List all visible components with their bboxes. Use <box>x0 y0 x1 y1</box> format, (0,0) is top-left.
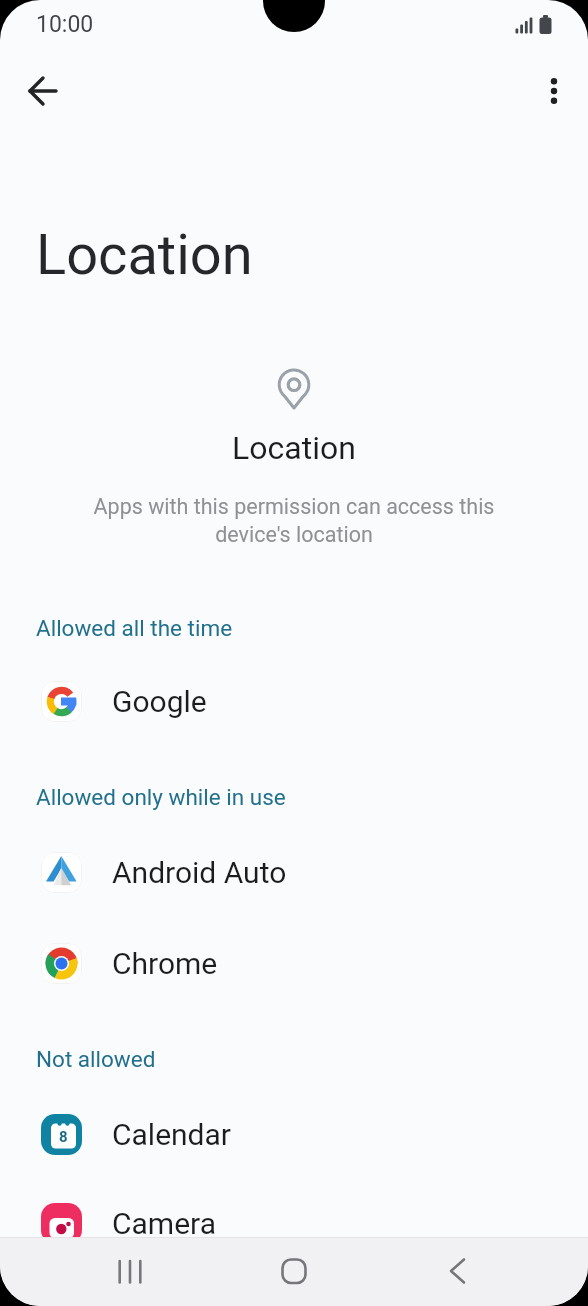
staticText: Allowed all the time <box>36 615 233 641</box>
staticText: Location <box>0 429 588 467</box>
button[interactable]: Google <box>0 670 588 732</box>
button[interactable] <box>527 64 581 118</box>
button[interactable]: 8 <box>0 1103 588 1165</box>
staticText: Apps with this permission can access thi… <box>0 494 588 547</box>
staticText: Allowed only while in use <box>36 784 286 810</box>
staticText: Android Auto <box>112 855 287 890</box>
staticText: Not allowed <box>36 1046 156 1072</box>
staticText: 8 <box>59 1128 68 1146</box>
staticText: Camera <box>112 1206 216 1241</box>
button[interactable] <box>212 1237 376 1306</box>
button[interactable] <box>376 1237 540 1306</box>
staticText: Location <box>36 222 253 288</box>
button[interactable]: Android Auto <box>0 841 588 903</box>
staticText: 10:00 <box>36 11 94 38</box>
button[interactable] <box>48 1237 212 1306</box>
staticText: Google <box>112 684 207 719</box>
button[interactable]: Camera <box>0 1192 588 1254</box>
button[interactable] <box>16 64 70 118</box>
staticText: Calendar <box>112 1117 232 1152</box>
button[interactable]: Chrome <box>0 932 588 994</box>
staticText: Chrome <box>112 946 218 981</box>
